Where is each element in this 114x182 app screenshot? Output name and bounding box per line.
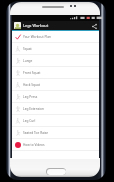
button[interactable]: Lunge (12, 55, 99, 66)
staticText: Hack Squat (23, 83, 40, 87)
staticText: Squat (23, 47, 32, 51)
button[interactable]: Leg Curl (12, 115, 99, 126)
button[interactable]: Squat (12, 43, 99, 54)
staticText: Leg Curl (23, 119, 36, 123)
staticText: Leg Extension (23, 107, 44, 111)
staticText: Seated Toe Raise (23, 131, 49, 135)
button[interactable]: Front Squat (12, 67, 99, 78)
button[interactable]: Share (90, 22, 98, 30)
button[interactable]: Legs Workout (12, 21, 99, 30)
button[interactable]: Leg Extension (12, 103, 99, 114)
button[interactable]: Hack Squat (12, 79, 99, 90)
button[interactable]: Seated Toe Raise (12, 127, 99, 138)
staticText: How to Videos (23, 143, 45, 147)
button[interactable]: How to Videos (12, 139, 99, 150)
button[interactable]: Your Workout Plan (12, 31, 99, 42)
staticText: Leg Press (23, 95, 38, 99)
staticText: Your Workout Plan (23, 35, 51, 39)
button[interactable]: Leg Press (12, 91, 99, 102)
staticText: Lunge (23, 59, 33, 63)
staticText: Front Squat (23, 71, 41, 75)
staticText: Legs Workout (23, 23, 49, 28)
